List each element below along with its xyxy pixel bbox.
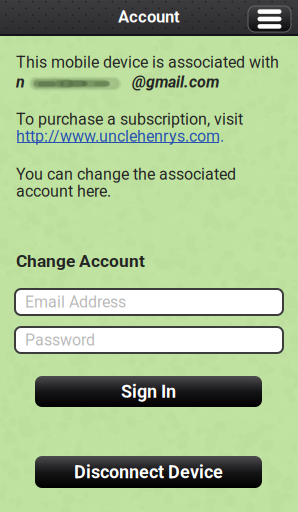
staticText: account here.: [16, 182, 111, 201]
staticText: n: [16, 73, 25, 91]
staticText: Disconnect Device: [74, 461, 223, 483]
staticText: This mobile device is associated with: [16, 53, 279, 72]
button[interactable]: Menu: [248, 6, 291, 32]
button[interactable]: Sign In: [35, 376, 262, 407]
staticText: Sign In: [121, 381, 176, 402]
staticText: @gmail.com: [132, 73, 219, 91]
staticText: You can change the associated: [16, 165, 236, 184]
staticText: Password: [25, 331, 95, 349]
button[interactable]: Disconnect Device: [35, 456, 262, 488]
button[interactable]: Email Address: [15, 289, 283, 315]
staticText: http://www.unclehenrys.com.: [16, 127, 224, 146]
staticText: Email Address: [25, 293, 126, 311]
staticText: Account: [118, 7, 180, 26]
staticText: Change Account: [16, 251, 145, 271]
staticText: To purchase a subscription, visit: [16, 110, 243, 129]
button[interactable]: Password: [15, 327, 283, 353]
